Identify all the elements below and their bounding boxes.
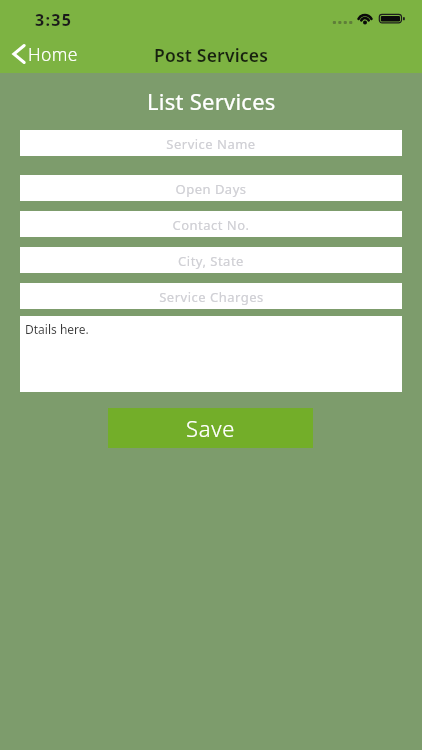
staticText: List Services <box>147 86 276 116</box>
staticText: Post Services <box>154 43 269 67</box>
staticText: Service Charges <box>159 288 264 306</box>
button[interactable]: Open Days <box>20 175 402 201</box>
button[interactable]: Dtails here. <box>20 316 402 392</box>
button[interactable]: Contact No. <box>20 211 402 237</box>
staticText: Service Name <box>166 135 256 153</box>
button[interactable]: Back <box>11 38 78 70</box>
staticText: Contact No. <box>172 216 250 234</box>
button[interactable]: Service Charges <box>20 283 402 309</box>
staticText: Save <box>186 413 236 443</box>
staticText: Open Days <box>175 180 247 198</box>
button[interactable]: City, State <box>20 247 402 273</box>
other: Back <box>11 43 26 65</box>
button[interactable]: Save <box>108 408 313 448</box>
staticText: 3:35 <box>35 9 73 31</box>
staticText: Dtails here. <box>25 321 89 337</box>
other: Signal, Wi-Fi and battery status <box>330 8 410 28</box>
button[interactable]: Service Name <box>20 130 402 156</box>
staticText: Home <box>28 42 78 66</box>
staticText: City, State <box>178 252 244 270</box>
